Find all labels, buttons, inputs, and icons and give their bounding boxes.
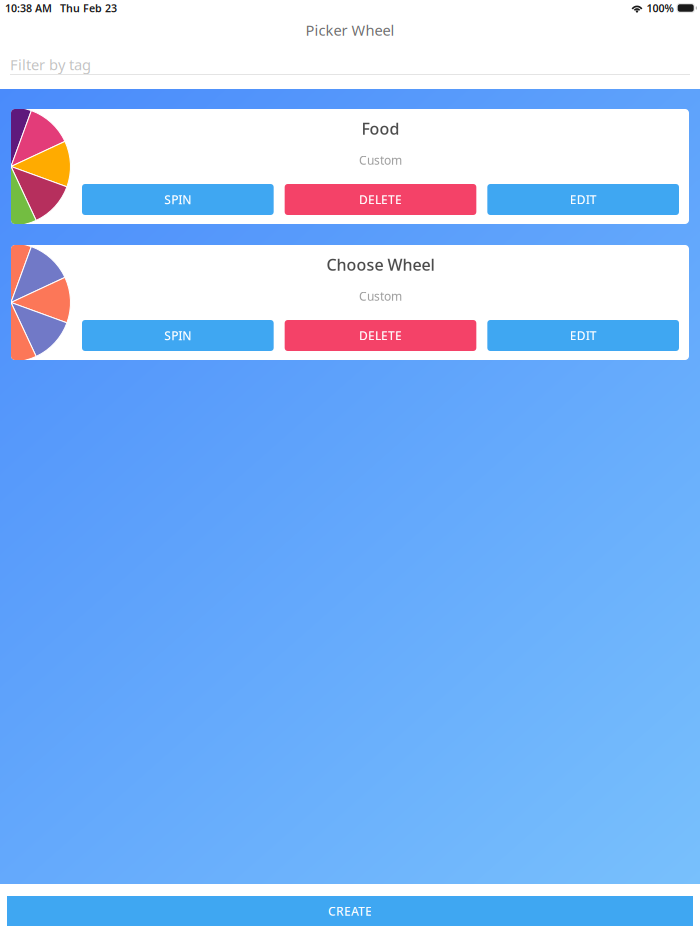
button[interactable]: EDIT xyxy=(487,320,679,351)
staticText: Filter by tag xyxy=(10,55,91,74)
button[interactable]: Filter by tag xyxy=(0,50,700,75)
staticText: EDIT xyxy=(570,327,597,343)
staticText: CREATE xyxy=(328,903,372,919)
staticText: 10:38 AM xyxy=(5,1,52,15)
staticText: DELETE xyxy=(359,327,402,343)
button[interactable]: DELETE xyxy=(285,184,476,215)
staticText: Choose Wheel xyxy=(326,254,434,275)
staticText: SPIN xyxy=(164,191,191,207)
button[interactable]: Spin Food wheel xyxy=(11,107,130,226)
staticText: Thu Feb 23 xyxy=(60,1,117,15)
staticText: Food xyxy=(361,118,399,139)
staticText: Custom xyxy=(359,288,402,304)
staticText: Picker Wheel xyxy=(305,20,394,40)
button[interactable]: EDIT xyxy=(487,184,679,215)
button[interactable]: DELETE xyxy=(285,320,476,351)
staticText: Custom xyxy=(359,152,402,168)
staticText: DELETE xyxy=(359,191,402,207)
button[interactable]: Spin Choose Wheel wheel xyxy=(11,243,130,362)
staticText: SPIN xyxy=(164,327,191,343)
staticText: 100% xyxy=(646,1,673,15)
staticText: EDIT xyxy=(570,191,597,207)
button[interactable]: SPIN xyxy=(82,320,274,351)
button[interactable]: SPIN xyxy=(82,184,274,215)
button[interactable]: CREATE xyxy=(7,896,693,926)
